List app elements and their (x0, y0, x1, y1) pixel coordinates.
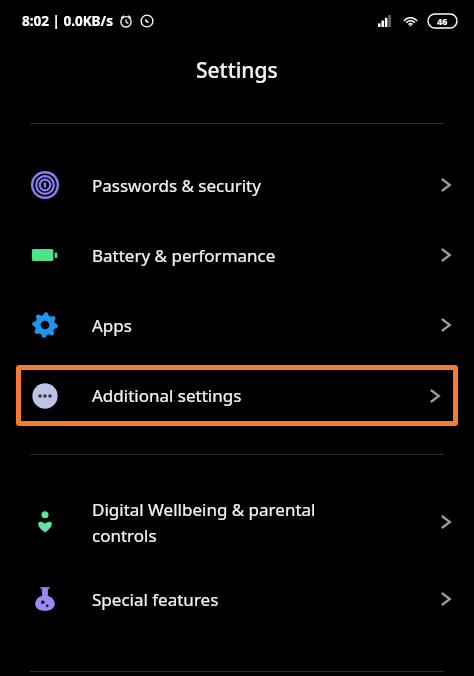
other: Open (429, 386, 441, 406)
button[interactable]: Passwords & security (0, 150, 474, 220)
staticText: Settings (196, 56, 278, 85)
other: Open (440, 315, 452, 335)
staticText: Passwords & security (92, 174, 261, 197)
other: Open (440, 512, 452, 532)
button[interactable]: Digital Wellbeing & parental controls (0, 480, 474, 564)
other: Open (440, 175, 452, 195)
other: Open (440, 245, 452, 265)
staticText: Special features (92, 588, 219, 611)
button[interactable]: Battery & performance (0, 220, 474, 290)
button[interactable]: Additional settings (21, 370, 453, 421)
other: Open (440, 589, 452, 609)
staticText: Battery & performance (92, 244, 276, 267)
staticText: Apps (92, 314, 132, 337)
button[interactable]: Apps (0, 290, 474, 360)
button[interactable]: Special features (0, 564, 474, 634)
staticText: 46 (437, 15, 448, 27)
staticText: Additional settings (92, 384, 242, 407)
staticText: Digital Wellbeing & parental controls (92, 498, 316, 547)
staticText: 8:02 | 0.0KB/s (22, 12, 113, 30)
